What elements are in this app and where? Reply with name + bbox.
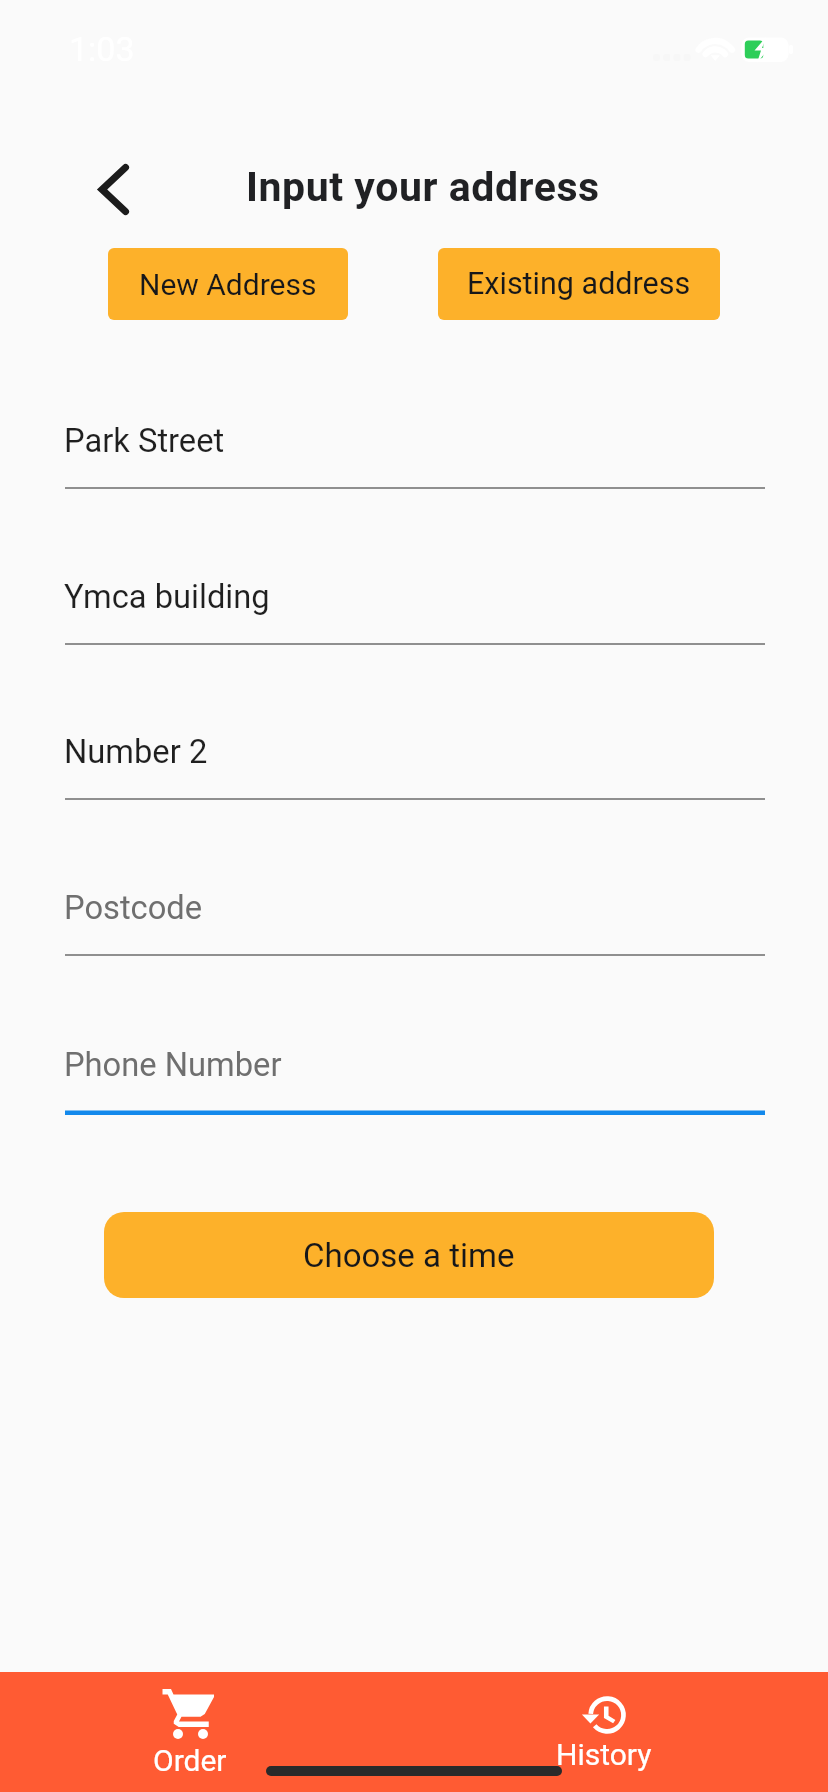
button[interactable]: Order [0,1672,414,1792]
button[interactable]: Choose a time [104,1212,714,1298]
staticText: Phone Number [64,1046,282,1084]
button[interactable]: Back [84,156,144,222]
staticText: History [556,1737,652,1772]
staticText: Ymca building [64,578,270,616]
staticText: Park Street [64,422,225,460]
button[interactable]: New Address [108,248,348,320]
staticText: New Address [139,267,317,302]
staticText: Order [153,1743,227,1778]
button[interactable]: Postcode [65,859,765,979]
staticText: Postcode [64,889,203,927]
staticText: Choose a time [303,1236,515,1275]
button[interactable]: Phone Number [65,1016,765,1136]
button[interactable]: History [414,1672,828,1792]
button[interactable]: Park Street [65,392,765,512]
button[interactable]: Ymca building [65,548,765,668]
staticText: Existing address [467,266,691,302]
staticText: Number 2 [64,733,208,771]
staticText: Input your address [246,163,600,211]
button[interactable]: Number 2 [65,703,765,823]
button[interactable]: Existing address [438,248,720,320]
